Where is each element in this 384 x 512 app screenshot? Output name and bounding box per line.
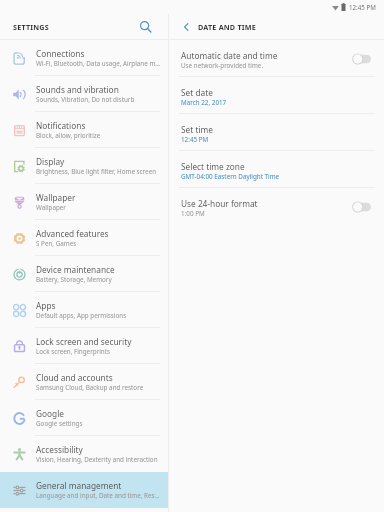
staticText: Battery, Storage, Memory <box>36 275 112 284</box>
button[interactable]: Back <box>180 21 192 33</box>
button[interactable]: Wallpaper <box>0 184 168 220</box>
staticText: 1:00 PM <box>181 209 205 218</box>
button[interactable]: Advanced features <box>0 220 168 256</box>
staticText: Set time <box>181 124 213 135</box>
staticText: Accessibility <box>36 444 83 455</box>
staticText: Select time zone <box>181 161 245 172</box>
button[interactable]: Toggle <box>352 53 371 65</box>
button[interactable]: General management <box>0 472 168 508</box>
staticText: GMT-04:00 Eastern Daylight Time <box>181 172 280 181</box>
staticText: Lock screen, Fingerprints <box>36 347 111 356</box>
staticText: Advanced features <box>36 228 109 239</box>
staticText: Use 24-hour format <box>181 198 258 209</box>
staticText: Samsung Cloud, Backup and restore <box>36 383 144 392</box>
button[interactable]: Display <box>0 148 168 184</box>
button[interactable]: Apps <box>0 292 168 328</box>
staticText: Set date <box>181 87 213 98</box>
staticText: S Pen, Games <box>36 239 77 248</box>
staticText: Sounds and vibration <box>36 84 119 95</box>
staticText: Automatic date and time <box>181 50 278 61</box>
staticText: Display <box>36 156 65 167</box>
button[interactable]: Set date <box>169 77 384 114</box>
staticText: Wi-Fi, Bluetooth, Data usage, Airplane m… <box>36 59 161 68</box>
button[interactable]: Use 24-hour format <box>169 188 384 225</box>
button[interactable]: Back <box>169 14 256 40</box>
staticText: 12:45 PM <box>349 3 376 11</box>
staticText: Vision, Hearing, Dexterity and interacti… <box>36 455 158 464</box>
staticText: Brightness, Blue light filter, Home scre… <box>36 167 157 176</box>
staticText: Connections <box>36 48 85 59</box>
button[interactable]: Search <box>139 20 153 34</box>
staticText: DATE AND TIME <box>198 22 256 32</box>
button[interactable]: Select time zone <box>169 151 384 188</box>
staticText: Block, allow, prioritize <box>36 131 101 140</box>
button[interactable]: Accessibility <box>0 436 168 472</box>
staticText: Google <box>36 408 65 419</box>
staticText: Cloud and accounts <box>36 372 113 383</box>
staticText: Use network-provided time. <box>181 61 264 70</box>
staticText: Wallpaper <box>36 203 66 212</box>
button[interactable]: Set time <box>169 114 384 151</box>
button[interactable]: Notifications <box>0 112 168 148</box>
button[interactable]: Google <box>0 400 168 436</box>
button[interactable]: SETTINGS <box>0 14 168 40</box>
staticText: Apps <box>36 300 56 311</box>
staticText: Google settings <box>36 419 83 428</box>
staticText: SETTINGS <box>13 22 49 32</box>
staticText: Language and input, Date and time, Res… <box>36 491 160 500</box>
button[interactable]: Sounds and vibration <box>0 76 168 112</box>
staticText: Notifications <box>36 120 86 131</box>
staticText: Sounds, Vibration, Do not disturb <box>36 95 135 104</box>
button[interactable]: Lock screen and security <box>0 328 168 364</box>
button[interactable]: Cloud and accounts <box>0 364 168 400</box>
button[interactable]: Automatic date and time <box>169 40 384 77</box>
staticText: Default apps, App permissions <box>36 311 127 320</box>
button[interactable]: Device maintenance <box>0 256 168 292</box>
staticText: Wallpaper <box>36 192 76 203</box>
staticText: General management <box>36 480 122 491</box>
staticText: March 22, 2017 <box>181 98 227 107</box>
button[interactable]: Toggle <box>352 201 371 213</box>
staticText: 12:45 PM <box>181 135 209 144</box>
staticText: Device maintenance <box>36 264 115 275</box>
button[interactable]: Connections <box>0 40 168 76</box>
staticText: Lock screen and security <box>36 336 132 347</box>
